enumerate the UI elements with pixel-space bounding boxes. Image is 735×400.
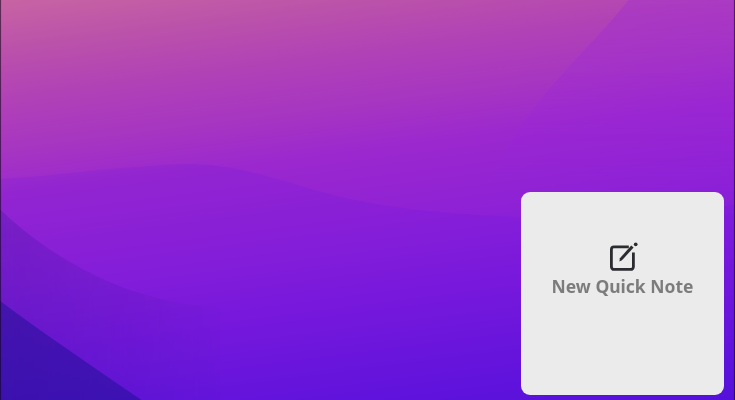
other: New Quick Note [609, 242, 639, 272]
staticText: New Quick Note [521, 274, 724, 300]
button[interactable]: New Quick Note [521, 192, 724, 395]
